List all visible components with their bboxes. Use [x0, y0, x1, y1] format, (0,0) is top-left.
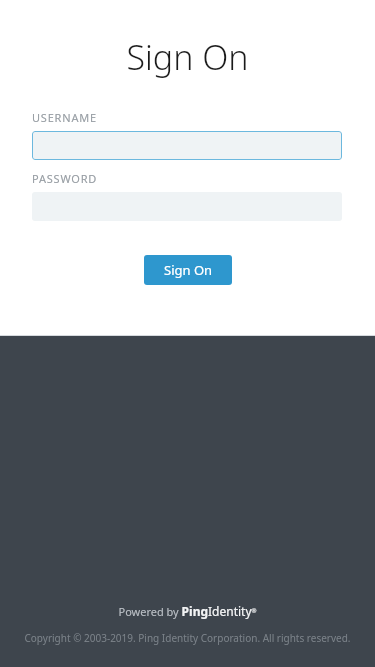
staticText: Sign On [164, 261, 213, 279]
staticText: Copyright © 2003-2019. Ping Identity Cor… [0, 631, 375, 645]
button[interactable]: Sign On [144, 255, 232, 285]
button[interactable]: Username input field [32, 131, 342, 160]
staticText: Powered by PingIdentity® [0, 603, 375, 619]
staticText: PASSWORD [32, 171, 98, 186]
staticText: USERNAME [32, 110, 97, 125]
staticText: Sign On [0, 34, 375, 80]
